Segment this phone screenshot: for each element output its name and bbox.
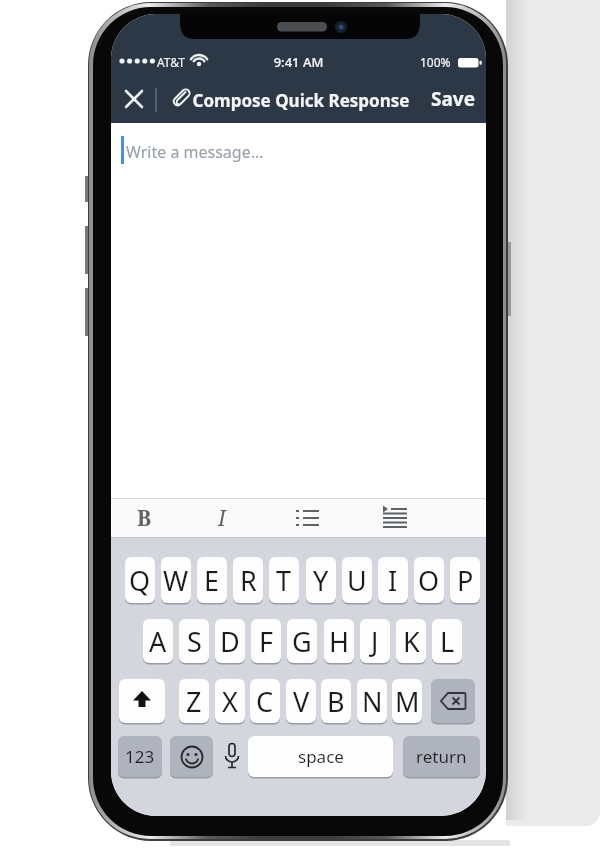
button[interactable]: U <box>342 557 372 603</box>
staticText: P <box>457 562 474 599</box>
button[interactable]: Q <box>125 557 155 603</box>
staticText: D <box>220 623 240 660</box>
button[interactable]: R <box>233 557 263 603</box>
staticText: 100% <box>420 54 451 70</box>
button[interactable]: H <box>324 619 354 663</box>
button[interactable]: M <box>392 679 422 723</box>
button[interactable]: J <box>360 619 390 663</box>
staticText: S <box>187 623 202 660</box>
button[interactable] <box>293 504 323 532</box>
staticText: V <box>293 683 310 720</box>
staticText: G <box>292 623 312 660</box>
button[interactable]: 123 <box>118 736 162 777</box>
button[interactable]: K <box>396 619 426 663</box>
staticText: Write a message... <box>126 141 264 163</box>
staticText: 9:41 AM <box>111 53 486 71</box>
button[interactable]: W <box>161 557 191 603</box>
button[interactable]: N <box>357 679 387 723</box>
button[interactable] <box>119 679 165 723</box>
staticText: Y <box>313 562 329 599</box>
button[interactable]: C <box>250 679 280 723</box>
staticText: U <box>347 562 367 599</box>
button[interactable]: space <box>248 736 393 777</box>
staticText: M <box>395 683 420 720</box>
button[interactable]: Save <box>425 84 481 114</box>
button[interactable]: return <box>403 736 480 777</box>
staticText: L <box>440 623 455 660</box>
staticText: E <box>204 562 220 599</box>
button[interactable]: I <box>378 557 408 603</box>
staticText: F <box>259 623 274 660</box>
staticText: R <box>240 562 257 599</box>
staticText: AT&T <box>157 54 185 70</box>
button[interactable] <box>431 679 475 723</box>
button[interactable]: F <box>251 619 281 663</box>
staticText: H <box>329 623 350 660</box>
staticText: T <box>276 562 292 599</box>
button[interactable]: P <box>450 557 480 603</box>
button[interactable]: X <box>215 679 245 723</box>
staticText: J <box>371 623 379 660</box>
staticText: I <box>388 562 398 599</box>
button[interactable]: Z <box>179 679 209 723</box>
button[interactable]: G <box>287 619 317 663</box>
staticText: X <box>222 683 238 720</box>
button[interactable]: B <box>321 679 351 723</box>
staticText: N <box>362 683 383 720</box>
staticText: O <box>418 562 440 599</box>
staticText: Compose Quick Response <box>186 89 416 113</box>
button[interactable]: B <box>129 502 159 534</box>
staticText: K <box>403 623 420 660</box>
button[interactable] <box>121 86 147 112</box>
button[interactable]: A <box>143 619 173 663</box>
button[interactable]: L <box>432 619 462 663</box>
button[interactable] <box>379 504 411 532</box>
staticText: I <box>218 504 226 533</box>
button[interactable] <box>169 86 193 112</box>
staticText: space <box>298 745 344 768</box>
staticText: Save <box>431 86 476 112</box>
button[interactable]: D <box>215 619 245 663</box>
staticText: W <box>163 562 189 599</box>
staticText: C <box>256 683 274 720</box>
staticText: 123 <box>125 745 155 768</box>
staticText: B <box>327 683 345 720</box>
button[interactable]: V <box>286 679 316 723</box>
button[interactable]: Y <box>306 557 336 603</box>
button[interactable] <box>170 736 213 777</box>
button[interactable]: S <box>179 619 209 663</box>
button[interactable]: T <box>269 557 299 603</box>
staticText: A <box>149 623 167 660</box>
staticText: Q <box>129 562 151 599</box>
staticText: return <box>416 745 467 768</box>
button[interactable] <box>219 736 245 777</box>
button[interactable]: O <box>414 557 444 603</box>
button[interactable]: I <box>207 502 237 534</box>
staticText: B <box>137 504 152 533</box>
button[interactable]: E <box>197 557 227 603</box>
staticText: Z <box>186 683 202 720</box>
